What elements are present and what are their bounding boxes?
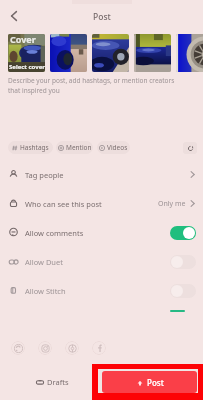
button[interactable]: Who can see this post [0, 189, 203, 218]
staticText: Allow comments [25, 228, 84, 238]
button[interactable]: More share options [65, 341, 79, 355]
button[interactable]: Back [4, 6, 24, 26]
staticText: Select cover [9, 63, 45, 71]
staticText: Hashtags [20, 143, 49, 152]
button[interactable]: Allow Stitch [0, 276, 203, 305]
button[interactable]: Mention [56, 141, 93, 154]
staticText: Post [93, 11, 111, 23]
staticText: Tag people [25, 170, 64, 180]
button[interactable]: Change aspect ratio [183, 142, 197, 154]
button[interactable]: Tag people [0, 160, 203, 189]
staticText: Allow Stitch [25, 286, 66, 296]
staticText: Describe your post, add hashtags, or men… [8, 76, 175, 85]
button[interactable]: Frame 4 [134, 34, 171, 72]
button[interactable]: Hashtags [8, 141, 53, 154]
button[interactable]: Allow comments [0, 218, 203, 247]
button[interactable]: Post [102, 371, 197, 393]
staticText: Mention [66, 143, 92, 152]
button[interactable]: Select cover [8, 34, 45, 72]
staticText: Only me [158, 199, 186, 209]
button[interactable]: Frame 3 [92, 34, 129, 72]
staticText: Videos [107, 143, 128, 152]
staticText: that inspired you [8, 86, 60, 95]
button[interactable]: Videos [97, 141, 130, 154]
button[interactable]: Frame 5 [176, 34, 203, 72]
button[interactable]: Allow Duet [0, 247, 203, 276]
button[interactable]: Share to Facebook [92, 341, 106, 355]
staticText: Drafts [47, 377, 69, 387]
staticText: Cover [10, 34, 36, 45]
staticText: Post [147, 377, 164, 388]
button[interactable]: Drafts [30, 372, 75, 392]
button[interactable]: Share to Instagram [38, 341, 52, 355]
staticText: Allow Duet [25, 257, 63, 267]
button[interactable]: Frame 2 [50, 34, 87, 72]
button[interactable]: Share to WhatsApp [11, 341, 25, 355]
staticText: Who can see this post [25, 199, 102, 209]
